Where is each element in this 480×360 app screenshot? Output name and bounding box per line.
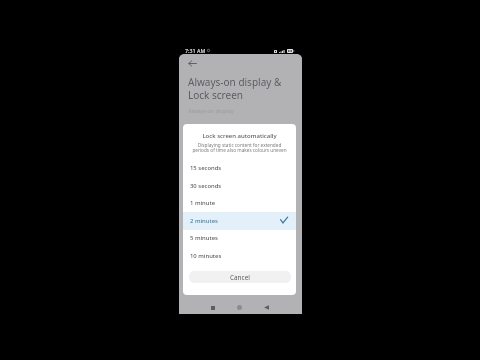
button[interactable]: 10 minutes bbox=[183, 247, 296, 265]
staticText: periods of time also makes colours uneve… bbox=[183, 147, 296, 153]
staticText: 10 minutes bbox=[190, 252, 288, 260]
button[interactable]: Back bbox=[260, 301, 273, 314]
staticText: Lock screen automatically bbox=[183, 132, 296, 140]
staticText: 7:31 AM bbox=[185, 47, 206, 54]
button[interactable]: 5 minutes bbox=[183, 229, 296, 247]
staticText: Always-on display & bbox=[188, 75, 282, 89]
button[interactable]: 2 minutes bbox=[183, 212, 296, 230]
button[interactable]: 30 seconds bbox=[183, 177, 296, 195]
staticText: Always-on display bbox=[188, 107, 234, 114]
staticText: 15 seconds bbox=[190, 164, 288, 172]
button[interactable]: Home bbox=[233, 301, 246, 314]
button[interactable]: 1 minute bbox=[183, 194, 296, 212]
staticText: Lock screen bbox=[188, 88, 244, 102]
staticText: 2 minutes bbox=[190, 217, 280, 225]
button[interactable]: 15 seconds bbox=[183, 159, 296, 177]
staticText: 1 minute bbox=[190, 199, 288, 207]
button[interactable]: Navigate up bbox=[186, 57, 199, 70]
staticText: Displaying static content for extended bbox=[183, 142, 296, 148]
staticText: 30 seconds bbox=[190, 182, 288, 190]
button[interactable]: Recent apps bbox=[206, 301, 219, 314]
staticText: Cancel bbox=[230, 273, 250, 282]
staticText: 5 minutes bbox=[190, 234, 288, 242]
button[interactable]: Cancel bbox=[189, 271, 291, 283]
